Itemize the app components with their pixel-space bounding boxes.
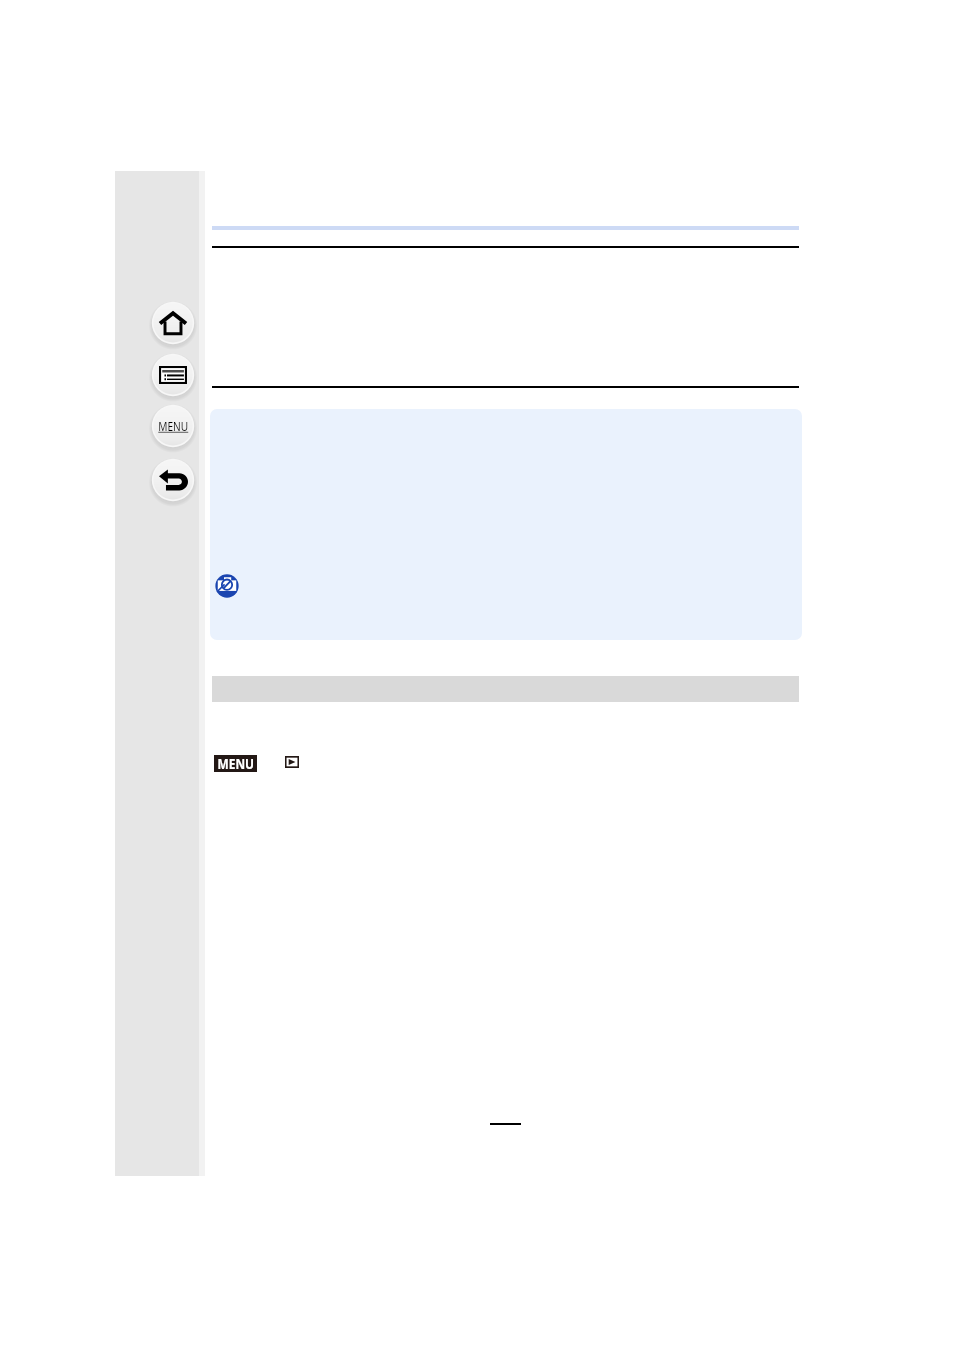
button[interactable]: Back — [150, 457, 196, 503]
button[interactable]: Menu — [150, 403, 196, 449]
button[interactable]: MENU — [214, 755, 257, 772]
staticText: MENU — [217, 755, 254, 772]
button[interactable]: Playback — [285, 756, 299, 768]
button[interactable]: Home — [150, 300, 196, 346]
staticText: MENU — [158, 417, 189, 435]
button[interactable]: Contents — [150, 352, 196, 398]
